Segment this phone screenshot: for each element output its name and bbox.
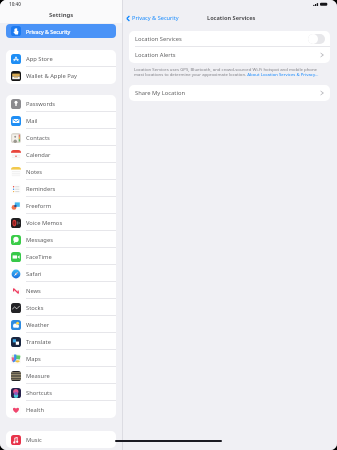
staticText: Notes bbox=[26, 168, 43, 176]
staticText: Music bbox=[26, 436, 42, 444]
staticText: Wallet & Apple Pay bbox=[26, 72, 77, 80]
staticText: Location Alerts bbox=[135, 51, 176, 59]
button[interactable]: Privacy & Security bbox=[126, 14, 179, 22]
staticText: News bbox=[26, 287, 41, 295]
button[interactable]: Maps bbox=[6, 350, 116, 367]
staticText: Location Services bbox=[135, 35, 182, 43]
button[interactable]: Passwords bbox=[6, 95, 116, 112]
button[interactable]: Weather bbox=[6, 316, 116, 333]
button[interactable]: Wallet & Apple Pay bbox=[6, 67, 116, 84]
staticText: FaceTime bbox=[26, 253, 52, 261]
staticText: App Store bbox=[26, 55, 53, 63]
staticText: Weather bbox=[26, 321, 50, 329]
staticText: Mail bbox=[26, 117, 38, 125]
staticText: Calendar bbox=[26, 151, 51, 159]
staticText: Privacy & Security bbox=[26, 28, 71, 35]
button[interactable]: Translate bbox=[6, 333, 116, 350]
button[interactable]: App Store bbox=[6, 50, 116, 67]
staticText: Share My Location bbox=[135, 89, 186, 97]
button[interactable]: Notes bbox=[6, 163, 116, 180]
button[interactable]: Reminders bbox=[6, 180, 116, 197]
staticText: Passwords bbox=[26, 100, 55, 108]
button[interactable]: FaceTime bbox=[6, 248, 116, 265]
staticText: Translate bbox=[26, 338, 51, 346]
staticText: Settings bbox=[49, 11, 74, 19]
button[interactable]: Calendar bbox=[6, 146, 116, 163]
button[interactable]: News bbox=[6, 282, 116, 299]
button[interactable]: Share My Location bbox=[135, 85, 324, 101]
staticText: Freeform bbox=[26, 202, 52, 210]
button[interactable]: Shortcuts bbox=[6, 384, 116, 401]
button[interactable]: Voice Memos bbox=[6, 214, 116, 231]
button[interactable]: Privacy & Security bbox=[6, 24, 116, 38]
button[interactable]: Messages bbox=[6, 231, 116, 248]
staticText: Safari bbox=[26, 270, 42, 278]
button[interactable]: Measure bbox=[6, 367, 116, 384]
staticText: Privacy & Security bbox=[132, 14, 179, 22]
staticText: Location Services uses GPS, Bluetooth, a… bbox=[134, 66, 328, 77]
staticText: Reminders bbox=[26, 185, 56, 193]
button[interactable]: Stocks bbox=[6, 299, 116, 316]
button[interactable]: Location Services bbox=[129, 31, 330, 47]
staticText: Measure bbox=[26, 372, 50, 380]
staticText: Voice Memos bbox=[26, 219, 63, 227]
button[interactable]: Location Services switch bbox=[308, 34, 325, 44]
button[interactable]: Safari bbox=[6, 265, 116, 282]
staticText: 10:40 bbox=[9, 1, 21, 7]
staticText: Health bbox=[26, 406, 44, 414]
button[interactable]: Mail bbox=[6, 112, 116, 129]
staticText: Location Services bbox=[207, 14, 256, 22]
staticText: Maps bbox=[26, 355, 41, 363]
staticText: Stocks bbox=[26, 304, 44, 312]
button[interactable]: Music bbox=[6, 431, 116, 448]
button[interactable]: Contacts bbox=[6, 129, 116, 146]
staticText: Contacts bbox=[26, 134, 50, 142]
staticText: Messages bbox=[26, 236, 53, 244]
staticText: Shortcuts bbox=[26, 389, 52, 397]
button[interactable]: Freeform bbox=[6, 197, 116, 214]
button[interactable]: Location Alerts bbox=[135, 47, 324, 63]
button[interactable]: Health bbox=[6, 401, 116, 418]
